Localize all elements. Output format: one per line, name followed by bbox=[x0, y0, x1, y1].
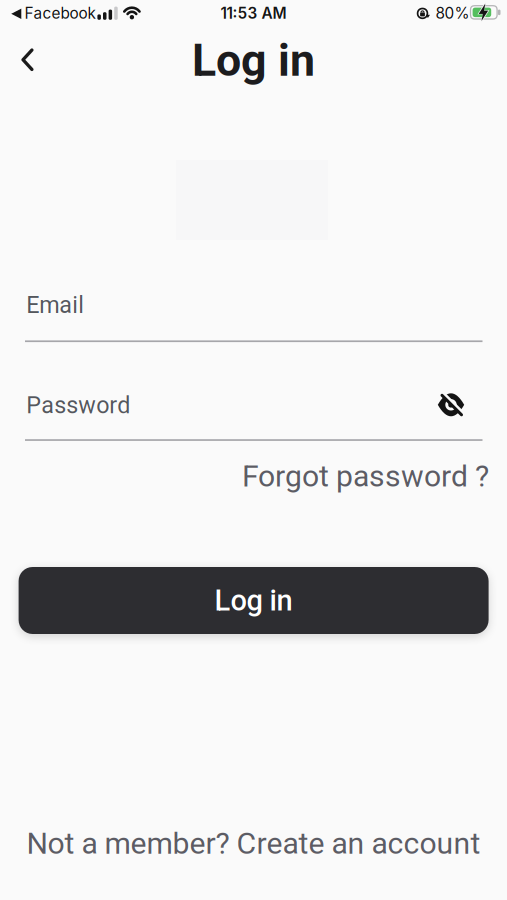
button[interactable]: Back bbox=[3, 36, 51, 84]
staticText: Email bbox=[26, 291, 84, 319]
staticText: 11:53 AM bbox=[220, 4, 286, 23]
staticText: Log in bbox=[215, 583, 293, 618]
staticText: Log in bbox=[192, 34, 315, 86]
staticText: Not a member? Create an account bbox=[26, 826, 480, 861]
button[interactable]: Not a member? Create an account bbox=[26, 826, 480, 861]
staticText: 80% bbox=[435, 4, 469, 23]
staticText: Forgot password ? bbox=[242, 459, 489, 494]
staticText: Password bbox=[26, 392, 130, 419]
button[interactable]: Show password bbox=[429, 383, 473, 427]
button[interactable]: Log in bbox=[19, 567, 489, 634]
button[interactable]: Forgot password ? bbox=[242, 459, 507, 494]
staticText: Facebook bbox=[25, 4, 96, 23]
